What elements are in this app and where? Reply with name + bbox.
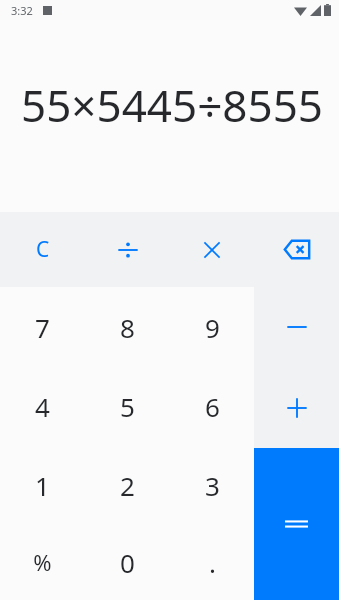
staticText: 4: [35, 389, 50, 424]
staticText: 6: [205, 389, 220, 424]
button[interactable]: Plus: [254, 367, 339, 448]
staticText: 5: [120, 389, 135, 424]
button[interactable]: 6: [170, 367, 254, 446]
staticText: 0: [120, 545, 135, 580]
button[interactable]: C: [0, 212, 85, 287]
button[interactable]: 1: [0, 446, 85, 524]
staticText: .: [209, 545, 216, 580]
button[interactable]: 0: [85, 524, 170, 600]
staticText: 7: [35, 310, 50, 345]
button[interactable]: 8: [85, 287, 170, 367]
button[interactable]: 9: [170, 287, 254, 367]
staticText: 3: [205, 468, 220, 503]
button[interactable]: 7: [0, 287, 85, 367]
staticText: 8: [120, 310, 135, 345]
button[interactable]: 5: [85, 367, 170, 446]
button[interactable]: Divide: [85, 212, 170, 287]
staticText: 1: [35, 468, 50, 503]
button[interactable]: %: [0, 524, 85, 600]
staticText: C: [36, 235, 50, 264]
staticText: 55×5445÷8555: [20, 75, 323, 135]
button[interactable]: 2: [85, 446, 170, 524]
staticText: 2: [120, 468, 135, 503]
button[interactable]: 3: [170, 446, 254, 524]
staticText: 3:32: [11, 3, 33, 18]
staticText: 9: [205, 310, 220, 345]
button[interactable]: 4: [0, 367, 85, 446]
button[interactable]: Multiply: [170, 212, 254, 287]
button[interactable]: Minus: [254, 287, 339, 367]
button[interactable]: .: [170, 524, 254, 600]
button[interactable]: Backspace: [254, 212, 339, 287]
button[interactable]: Equals: [254, 448, 339, 600]
staticText: %: [33, 547, 52, 577]
